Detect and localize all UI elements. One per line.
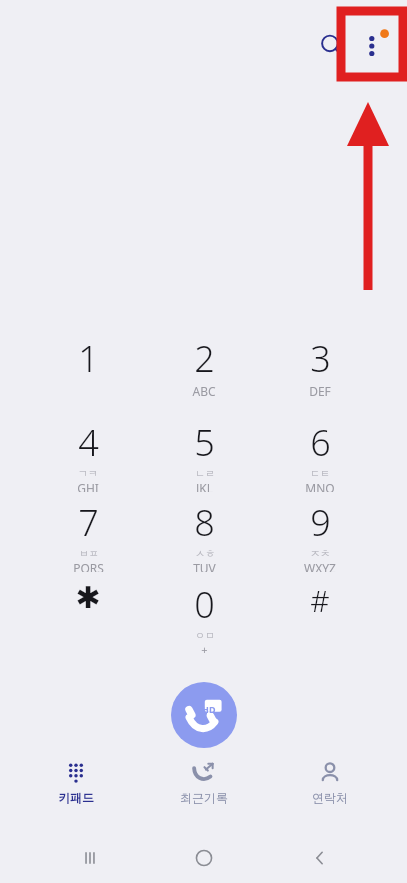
- button[interactable]: 2: [158, 334, 250, 408]
- button[interactable]: Home: [174, 840, 234, 876]
- button[interactable]: 4: [42, 418, 134, 492]
- staticText: 8: [194, 498, 215, 547]
- button[interactable]: Back: [290, 840, 350, 876]
- button[interactable]: More options: [352, 24, 396, 68]
- staticText: ✱: [75, 580, 101, 615]
- button[interactable]: 키패드: [20, 760, 132, 816]
- button[interactable]: 0: [158, 580, 250, 654]
- staticText: +: [201, 642, 208, 654]
- button[interactable]: #: [274, 580, 366, 654]
- staticText: 9: [310, 498, 331, 547]
- staticText: 0: [194, 580, 215, 629]
- staticText: 6: [310, 418, 331, 467]
- staticText: ㅈㅊ: [310, 547, 330, 560]
- button[interactable]: 9: [274, 498, 366, 572]
- staticText: 3: [310, 334, 331, 383]
- staticText: DEF: [309, 383, 331, 399]
- staticText: PQRS: [73, 560, 104, 572]
- staticText: 2: [194, 334, 215, 383]
- staticText: 7: [78, 498, 99, 547]
- button[interactable]: 5: [158, 418, 250, 492]
- staticText: ABC: [192, 383, 216, 399]
- staticText: ㄱㅋ: [78, 467, 98, 480]
- staticText: JKL: [196, 480, 213, 492]
- staticText: 1: [78, 334, 99, 383]
- staticText: GHI: [77, 480, 99, 492]
- staticText: ㅇㅁ: [195, 629, 215, 642]
- button[interactable]: Search: [310, 24, 354, 68]
- staticText: TUV: [193, 560, 216, 572]
- button[interactable]: 연락처: [274, 760, 386, 816]
- staticText: #: [310, 580, 330, 621]
- staticText: 최근기록: [180, 790, 228, 805]
- button[interactable]: 6: [274, 418, 366, 492]
- staticText: 연락처: [312, 790, 348, 805]
- staticText: ㄷㅌ: [310, 467, 330, 480]
- staticText: ㄴㄹ: [195, 467, 215, 480]
- staticText: 키패드: [58, 790, 94, 805]
- staticText: ㅅㅎ: [195, 547, 215, 560]
- button[interactable]: 7: [42, 498, 134, 572]
- button[interactable]: Call: [171, 682, 237, 748]
- button[interactable]: 최근기록: [148, 760, 260, 816]
- button[interactable]: 1: [42, 334, 134, 408]
- staticText: ㅂㅍ: [79, 547, 99, 560]
- button[interactable]: 3: [274, 334, 366, 408]
- staticText: HD: [202, 703, 216, 715]
- staticText: MNO: [305, 480, 335, 492]
- staticText: 5: [194, 418, 215, 467]
- button[interactable]: Recents: [60, 840, 120, 876]
- staticText: 4: [78, 418, 99, 467]
- button[interactable]: ✱: [42, 580, 134, 654]
- staticText: WXYZ: [304, 560, 336, 572]
- button[interactable]: 8: [158, 498, 250, 572]
